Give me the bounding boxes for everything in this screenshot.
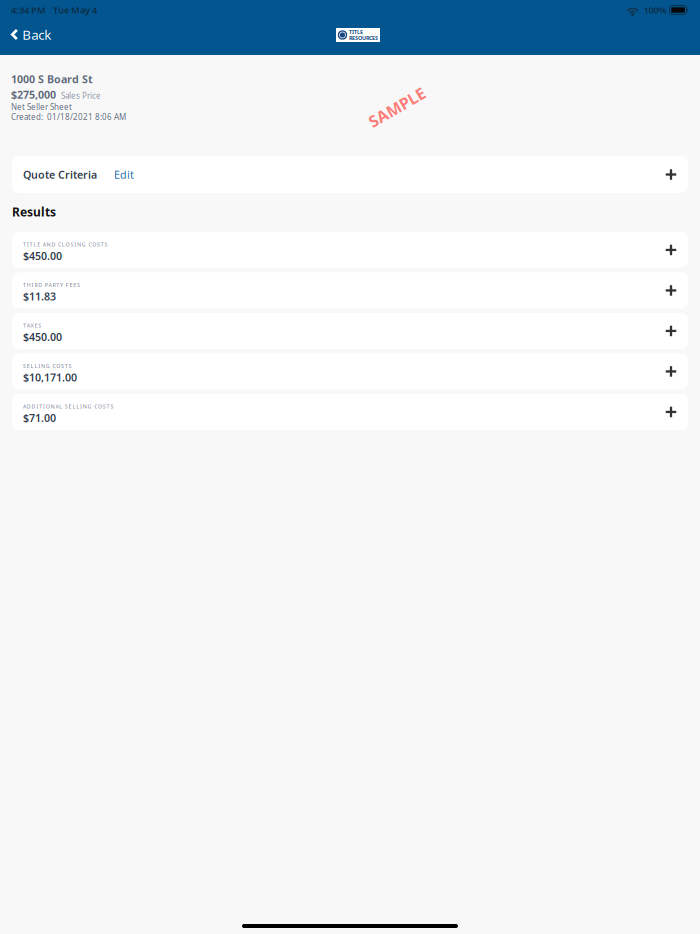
staticText: 4:34 PM <box>11 4 46 16</box>
staticText: TAXES <box>23 322 41 329</box>
button[interactable]: THIRD PARTY FEES <box>12 272 688 308</box>
staticText: Tue May 4 <box>53 4 97 16</box>
button[interactable]: TAXES <box>12 313 688 349</box>
staticText: $450.00 <box>23 330 62 344</box>
staticText: $11.83 <box>23 289 56 304</box>
staticText: Back <box>22 26 51 43</box>
staticText: TITLE AND CLOSING COSTS <box>23 241 108 248</box>
button[interactable]: Back <box>0 20 59 49</box>
button[interactable]: SELLING COSTS <box>12 353 688 389</box>
staticText: $450.00 <box>23 249 62 263</box>
button[interactable]: ADDITIONAL SELLING COSTS <box>12 394 688 430</box>
button[interactable]: TITLE AND CLOSING COSTS <box>12 232 688 268</box>
staticText: Results <box>12 204 56 220</box>
staticText: RESOURCES <box>349 34 378 42</box>
staticText: THIRD PARTY FEES <box>23 281 80 288</box>
staticText: Net Seller Sheet <box>11 102 72 112</box>
staticText: Sales Price <box>61 90 101 101</box>
staticText: Created: 01/18/2021 8:06 AM <box>11 112 126 122</box>
staticText: $71.00 <box>23 411 56 425</box>
staticText: Quote Criteria <box>23 167 97 182</box>
staticText: ADDITIONAL SELLING COSTS <box>23 403 113 410</box>
staticText: $275,000 <box>11 87 56 102</box>
staticText: 1000 S Board St <box>11 72 93 86</box>
staticText: SELLING COSTS <box>23 362 72 369</box>
staticText: Edit <box>114 167 134 182</box>
staticText: $10,171.00 <box>23 370 77 385</box>
button[interactable]: Quote Criteria <box>12 156 688 193</box>
staticText: SAMPLE <box>365 96 428 118</box>
staticText: 100% <box>644 4 667 16</box>
staticText: TITLE <box>349 28 363 36</box>
